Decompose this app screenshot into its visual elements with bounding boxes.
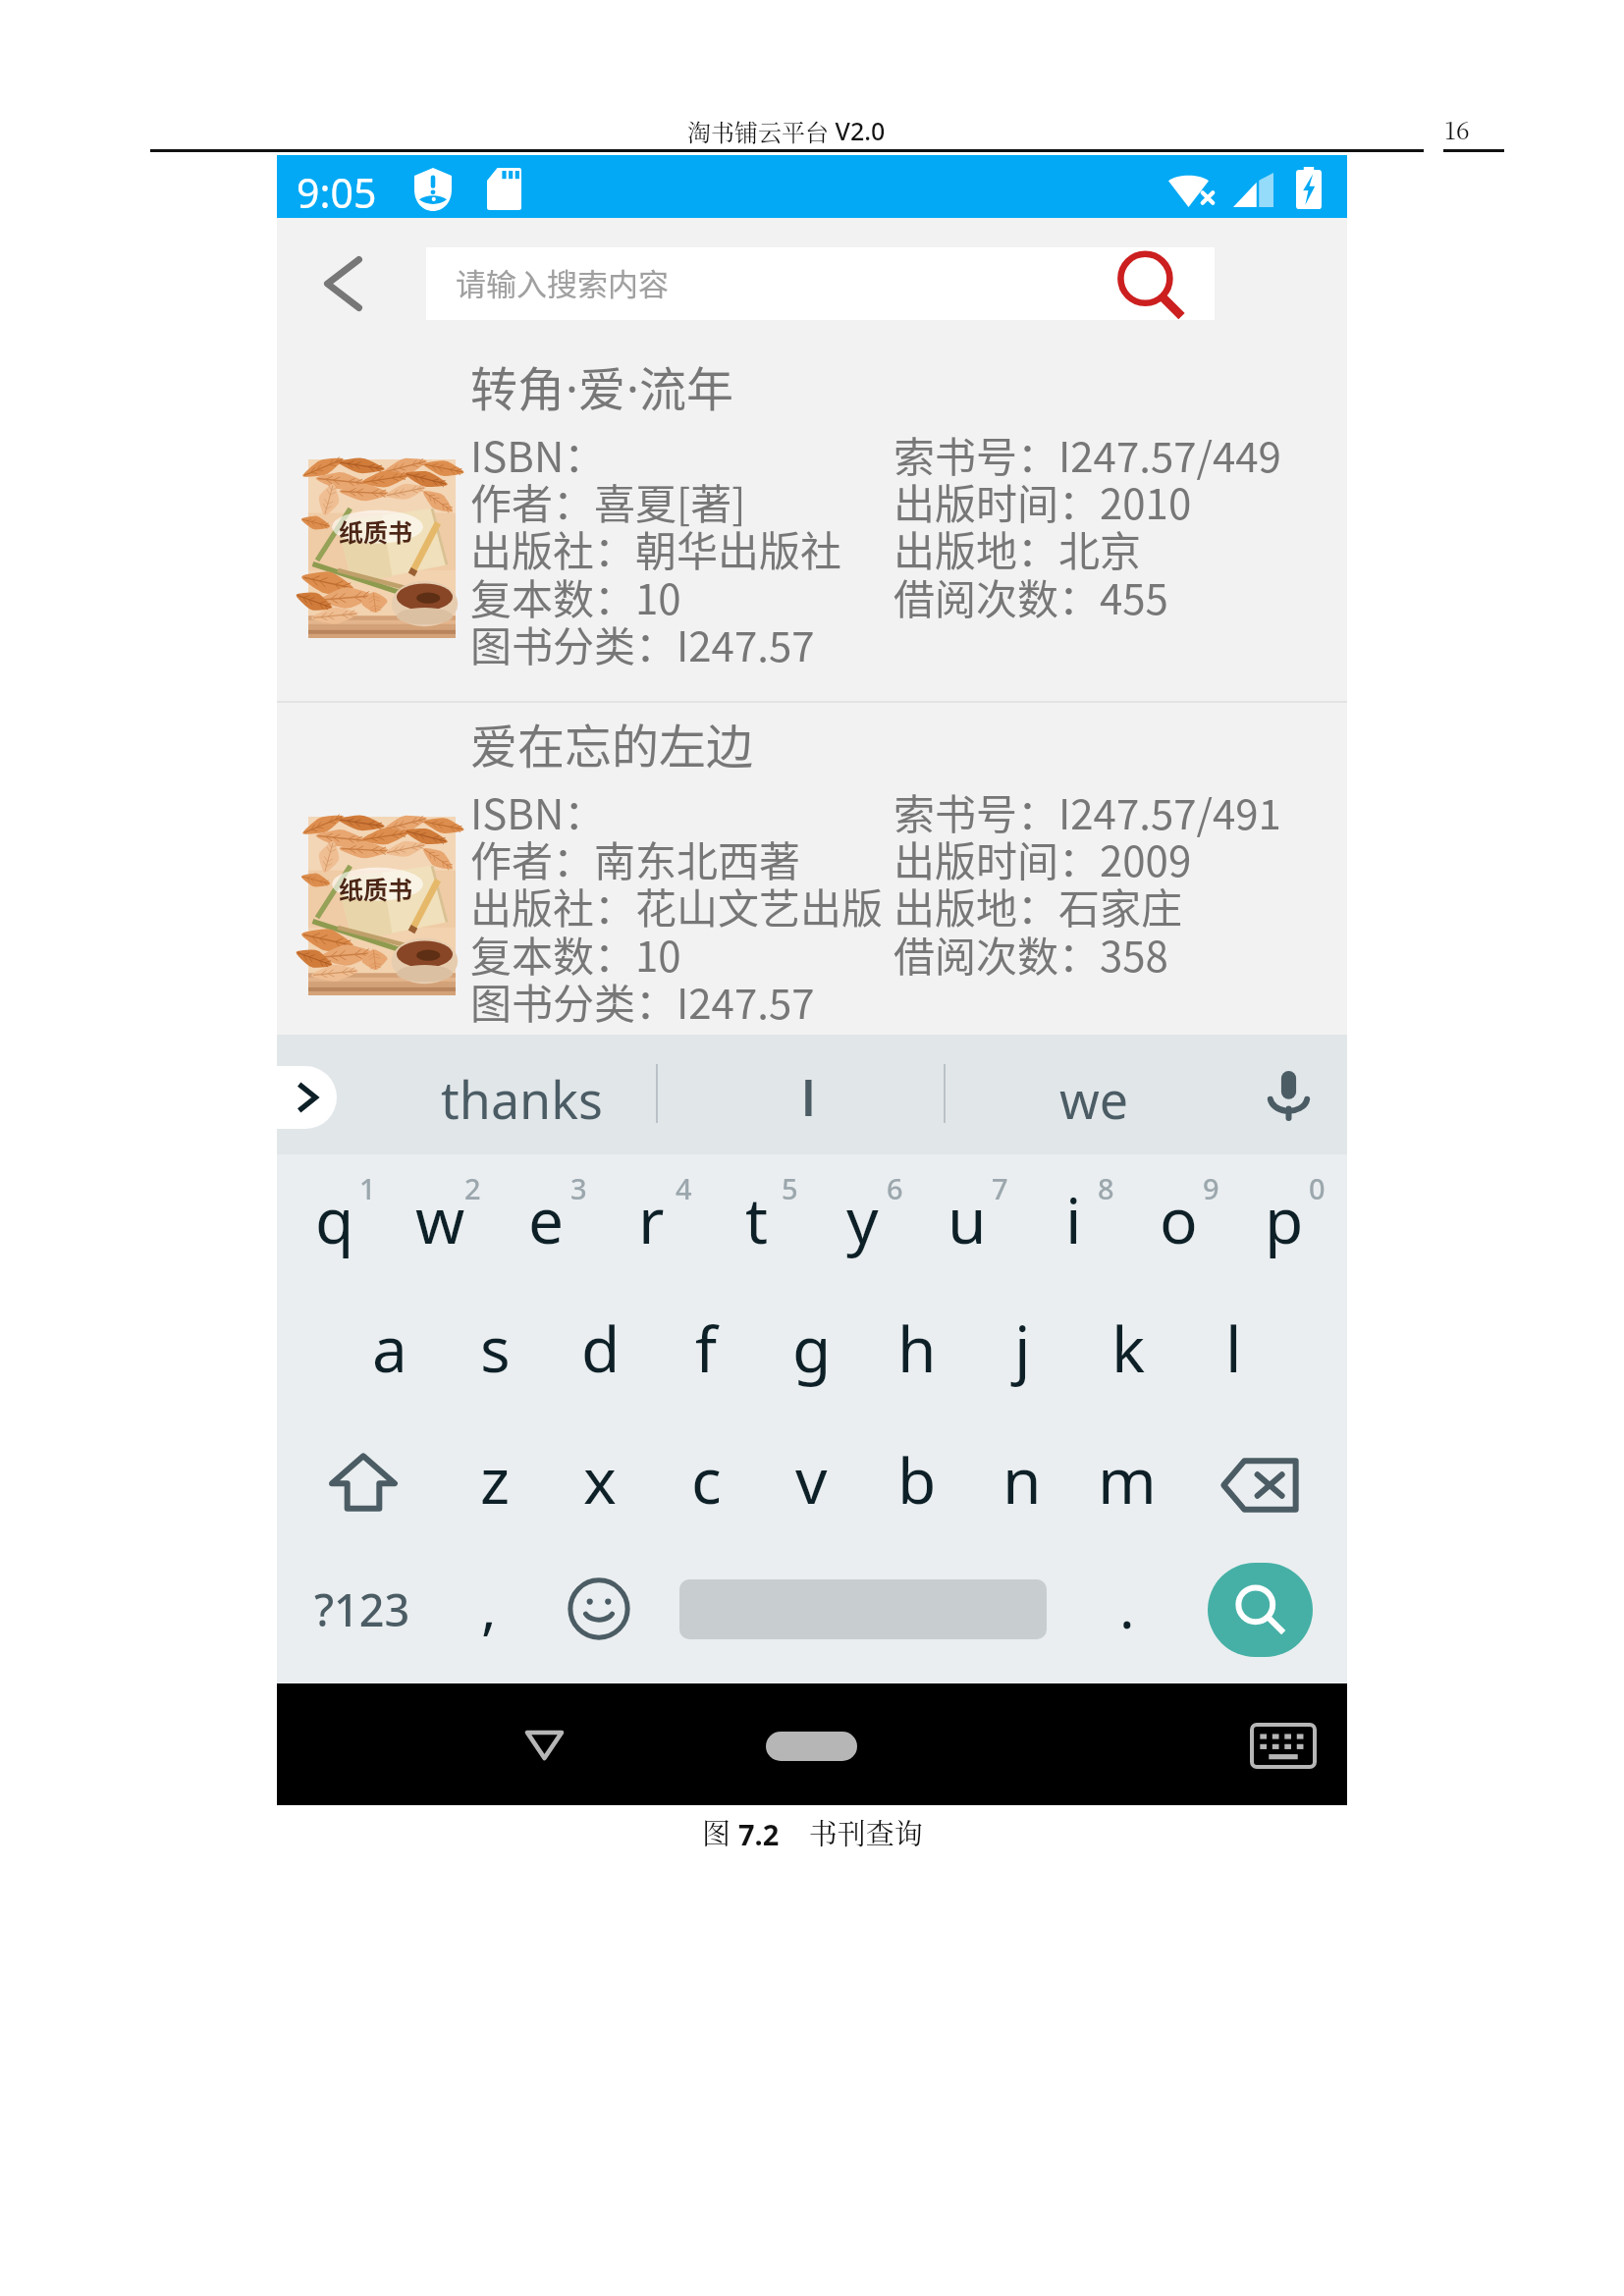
button[interactable]: Hide keyboard xyxy=(501,1707,587,1784)
staticText: I xyxy=(801,1069,816,1129)
button[interactable]: o xyxy=(1126,1170,1230,1268)
staticText: · xyxy=(626,356,639,420)
staticText: 2 xyxy=(464,1169,481,1207)
button[interactable]: ?123 xyxy=(289,1565,436,1653)
button[interactable]: thanks xyxy=(404,1051,639,1146)
staticText: 复本数：10 xyxy=(470,566,681,626)
staticText: , xyxy=(481,1568,497,1645)
button[interactable]: Shift xyxy=(317,1438,409,1526)
button[interactable]: z xyxy=(443,1430,547,1528)
button[interactable]: Switch keyboard xyxy=(1244,1707,1323,1784)
staticText: 书刊查询 xyxy=(780,1812,923,1853)
staticText: 4 xyxy=(676,1169,692,1207)
button[interactable]: , xyxy=(437,1557,541,1655)
button[interactable]: Space xyxy=(679,1579,1047,1639)
staticText: 8 xyxy=(1098,1169,1114,1207)
staticText: 纸质书 xyxy=(339,871,413,906)
staticText: 图书分类：I247.57 xyxy=(470,614,815,673)
staticText: 借阅次数：358 xyxy=(893,924,1168,984)
button[interactable]: r xyxy=(599,1170,703,1268)
staticText: b xyxy=(897,1437,937,1522)
staticText: 借阅次数：455 xyxy=(893,566,1168,626)
staticText: thanks xyxy=(441,1064,603,1134)
button[interactable]: we xyxy=(976,1051,1212,1146)
button[interactable]: k xyxy=(1076,1299,1180,1397)
button[interactable]: 请输入搜索内容 xyxy=(426,247,1215,320)
button[interactable]: j xyxy=(970,1299,1074,1397)
staticText: y xyxy=(846,1177,879,1262)
button[interactable]: More suggestions xyxy=(244,1066,337,1129)
staticText: 淘书铺云平台 xyxy=(687,114,829,147)
staticText: r xyxy=(638,1177,665,1262)
button[interactable]: Voice input xyxy=(1244,1050,1332,1139)
button[interactable]: 转角 xyxy=(277,347,1347,699)
staticText: 纸质书 xyxy=(339,513,413,549)
button[interactable]: Emoji xyxy=(554,1564,644,1654)
staticText: z xyxy=(480,1437,511,1522)
button[interactable]: m xyxy=(1075,1430,1179,1528)
button[interactable]: l xyxy=(1181,1299,1285,1397)
button[interactable]: 爱在忘的左边 xyxy=(277,705,1347,1056)
button[interactable]: I xyxy=(690,1051,926,1146)
button[interactable]: t xyxy=(705,1170,809,1268)
button[interactable]: d xyxy=(549,1299,653,1397)
staticText: h xyxy=(897,1306,937,1391)
staticText: 索书号：I247.57/449 xyxy=(893,424,1281,484)
staticText: t xyxy=(745,1177,769,1262)
staticText: s xyxy=(480,1306,511,1391)
staticText: p xyxy=(1265,1177,1304,1262)
staticText: 作者：喜夏[著] xyxy=(470,471,746,531)
staticText: ?123 xyxy=(314,1579,410,1639)
button[interactable]: Back xyxy=(296,238,390,330)
staticText: 出版社：花山文艺出版 xyxy=(470,876,884,935)
button[interactable]: n xyxy=(970,1430,1074,1528)
staticText: 索书号：I247.57/491 xyxy=(893,781,1281,841)
staticText: e xyxy=(528,1177,565,1262)
staticText: ISBN： xyxy=(470,424,606,484)
staticText: . xyxy=(1119,1568,1135,1645)
button[interactable]: a xyxy=(338,1299,442,1397)
button[interactable]: e xyxy=(494,1170,598,1268)
button[interactable]: v xyxy=(759,1430,863,1528)
staticText: k xyxy=(1111,1306,1146,1391)
button[interactable]: p xyxy=(1232,1170,1336,1268)
staticText: 作者：南东北西著 xyxy=(470,828,801,888)
staticText: v xyxy=(795,1437,828,1522)
staticText: · xyxy=(566,356,578,420)
button[interactable]: x xyxy=(548,1430,652,1528)
staticText: u xyxy=(947,1177,987,1262)
staticText: 7.2 xyxy=(738,1815,780,1853)
staticText: 出版社：朝华出版社 xyxy=(470,518,842,578)
staticText: 爱在忘的左边 xyxy=(470,709,754,777)
staticText: V2.0 xyxy=(829,114,886,147)
button[interactable]: Backspace xyxy=(1214,1441,1306,1529)
button[interactable]: g xyxy=(760,1299,864,1397)
staticText: 9 xyxy=(1203,1169,1219,1207)
staticText: 图书分类：I247.57 xyxy=(470,971,815,1031)
button[interactable]: b xyxy=(865,1430,969,1528)
staticText: 请输入搜索内容 xyxy=(456,260,669,304)
staticText: g xyxy=(792,1306,832,1391)
staticText: q xyxy=(315,1177,354,1262)
staticText: d xyxy=(581,1306,621,1391)
staticText: 转角 xyxy=(470,351,566,420)
button[interactable]: Search xyxy=(1208,1563,1313,1657)
button[interactable]: h xyxy=(865,1299,969,1397)
staticText: l xyxy=(1225,1306,1242,1391)
button[interactable]: q xyxy=(283,1170,387,1268)
button[interactable]: s xyxy=(443,1299,547,1397)
staticText: 5 xyxy=(782,1169,798,1207)
button[interactable]: y xyxy=(810,1170,914,1268)
staticText: n xyxy=(1002,1437,1042,1522)
staticText: c xyxy=(691,1437,722,1522)
button[interactable]: w xyxy=(388,1170,492,1268)
button[interactable]: Home xyxy=(766,1708,857,1785)
staticText: we xyxy=(1059,1064,1129,1134)
button[interactable]: i xyxy=(1021,1170,1125,1268)
button[interactable]: c xyxy=(654,1430,758,1528)
button[interactable]: Search xyxy=(1090,247,1218,320)
button[interactable]: u xyxy=(915,1170,1019,1268)
button[interactable]: . xyxy=(1075,1557,1179,1655)
button[interactable]: f xyxy=(654,1299,758,1397)
staticText: 16 xyxy=(1444,111,1470,144)
